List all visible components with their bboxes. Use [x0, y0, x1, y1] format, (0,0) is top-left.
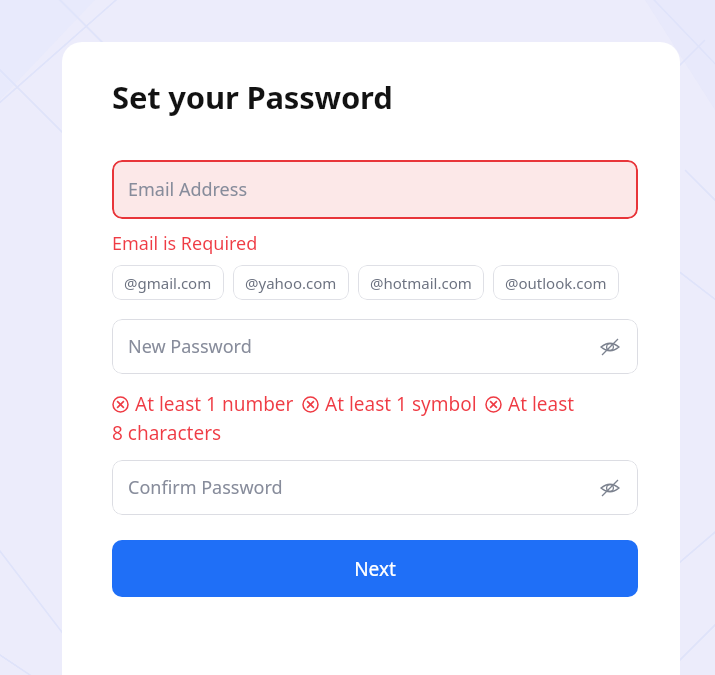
- button[interactable]: Email Address: [112, 160, 638, 219]
- button[interactable]: @gmail.com: [112, 265, 224, 300]
- staticText: @outlook.com: [505, 273, 607, 293]
- button[interactable]: New Password: [112, 319, 638, 374]
- staticText: At least 1 symbol: [325, 391, 477, 417]
- staticText: Email Address: [128, 177, 248, 202]
- staticText: Set your Password: [112, 76, 393, 118]
- staticText: @gmail.com: [124, 273, 212, 293]
- staticText: @yahoo.com: [245, 273, 337, 293]
- staticText: Email is Required: [112, 231, 258, 256]
- staticText: New Password: [128, 334, 252, 359]
- button[interactable]: Next: [112, 540, 638, 597]
- button[interactable]: @hotmail.com: [358, 265, 484, 300]
- staticText: Confirm Password: [128, 475, 283, 500]
- staticText: Next: [354, 556, 396, 582]
- button[interactable]: @outlook.com: [493, 265, 619, 300]
- staticText: 8 characters: [112, 420, 222, 446]
- button[interactable]: Confirm Password: [112, 460, 638, 515]
- staticText: At least: [508, 391, 575, 417]
- staticText: @hotmail.com: [370, 273, 472, 293]
- button[interactable]: @yahoo.com: [233, 265, 349, 300]
- staticText: At least 1 number: [135, 391, 294, 417]
- button[interactable]: Show password: [595, 332, 625, 362]
- button[interactable]: Show password: [595, 473, 625, 503]
